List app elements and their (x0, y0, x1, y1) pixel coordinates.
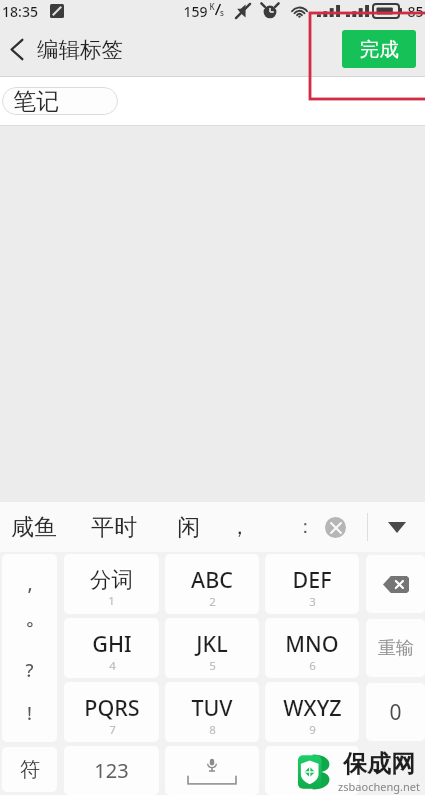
button[interactable]: 平时 (91, 513, 137, 542)
button[interactable]: Hide keyboard (368, 502, 425, 552)
staticText: JKL (196, 629, 228, 658)
staticText: 重输 (378, 637, 414, 660)
staticText: 4 (109, 658, 116, 674)
button[interactable]: ： (296, 515, 315, 539)
staticText: DEF (292, 565, 332, 594)
staticText: ? (25, 658, 34, 683)
staticText: 85 (407, 2, 424, 21)
staticText: 保成网 (343, 749, 415, 779)
staticText: 2 (209, 594, 216, 610)
button[interactable]: Back (0, 22, 32, 76)
staticText: MNO (285, 629, 339, 658)
staticText: 笔记 (13, 87, 59, 115)
button[interactable]: JKL (165, 618, 259, 678)
staticText: 5 (209, 658, 216, 674)
button[interactable]: Clear input (325, 517, 346, 538)
staticText: 9 (309, 722, 316, 738)
button[interactable]: Space (165, 746, 259, 795)
staticText: 8 (209, 722, 216, 738)
button[interactable]: 重输 (366, 619, 425, 677)
staticText: 123 (94, 757, 129, 784)
button[interactable]: ， (229, 514, 250, 540)
staticText: GHI (92, 629, 132, 658)
button[interactable]: 笔记 (2, 87, 118, 115)
button[interactable]: PQRS (64, 682, 159, 742)
staticText: , (27, 570, 33, 596)
button[interactable]: GHI (64, 618, 159, 678)
button[interactable]: MNO (265, 618, 359, 678)
staticText: 18:35 (2, 2, 38, 21)
staticText: TUV (191, 693, 233, 722)
button[interactable]: 123 (64, 746, 159, 795)
button[interactable]: ABC (165, 554, 259, 614)
staticText: PQRS (84, 693, 140, 722)
button[interactable]: 符 (2, 747, 57, 792)
staticText: 159 (183, 2, 208, 21)
button[interactable]: , (2, 554, 57, 742)
staticText: ! (27, 701, 32, 726)
button[interactable]: TUV (165, 682, 259, 742)
staticText: s (220, 7, 224, 18)
staticText: 3 (309, 594, 316, 610)
button[interactable]: Enter (265, 746, 359, 795)
button[interactable]: 分词 (64, 554, 159, 614)
staticText: 符 (20, 757, 40, 782)
staticText: ABC (191, 565, 233, 594)
staticText: 分词 (90, 566, 133, 593)
button[interactable]: DEF (265, 554, 359, 614)
staticText: WXYZ (283, 693, 342, 722)
staticText: 编辑标签 (37, 36, 123, 63)
button[interactable]: Backspace (366, 555, 425, 613)
button[interactable]: 闲 (177, 513, 200, 542)
staticText: 7 (109, 722, 116, 738)
staticText: K (209, 1, 215, 12)
button[interactable]: 完成 (342, 30, 416, 68)
button[interactable]: 咸鱼 (11, 513, 57, 542)
staticText: 1 (108, 593, 115, 609)
button[interactable]: WXYZ (265, 682, 359, 742)
staticText: 0 (389, 698, 402, 727)
button[interactable]: 0 (366, 683, 425, 741)
staticText: ° (26, 616, 34, 639)
staticText: 完成 (360, 37, 399, 62)
staticText: zsbaocheng.net (338, 779, 420, 794)
staticText: 6 (309, 658, 316, 674)
